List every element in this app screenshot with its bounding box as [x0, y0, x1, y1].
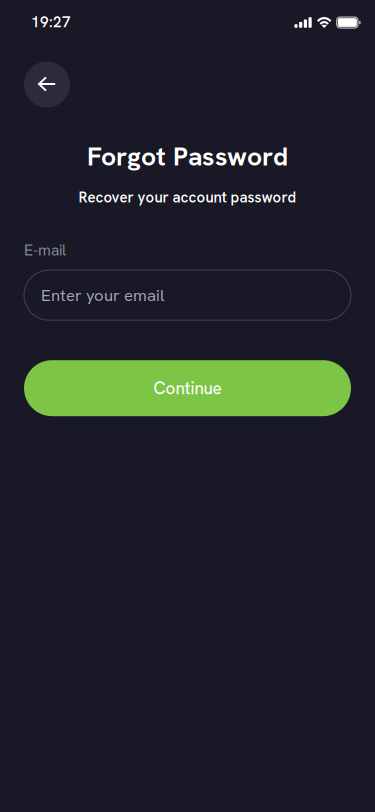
- staticText: Enter your email: [41, 284, 164, 306]
- staticText: Continue: [153, 377, 221, 399]
- button[interactable]: Back: [24, 61, 70, 108]
- staticText: Recover your account password: [78, 188, 296, 207]
- staticText: Forgot Password: [87, 139, 288, 174]
- staticText: E-mail: [24, 240, 66, 260]
- button[interactable]: Continue: [24, 360, 351, 416]
- button[interactable]: E-mail, Enter your email: [24, 270, 351, 320]
- staticText: 19:27: [31, 12, 71, 32]
